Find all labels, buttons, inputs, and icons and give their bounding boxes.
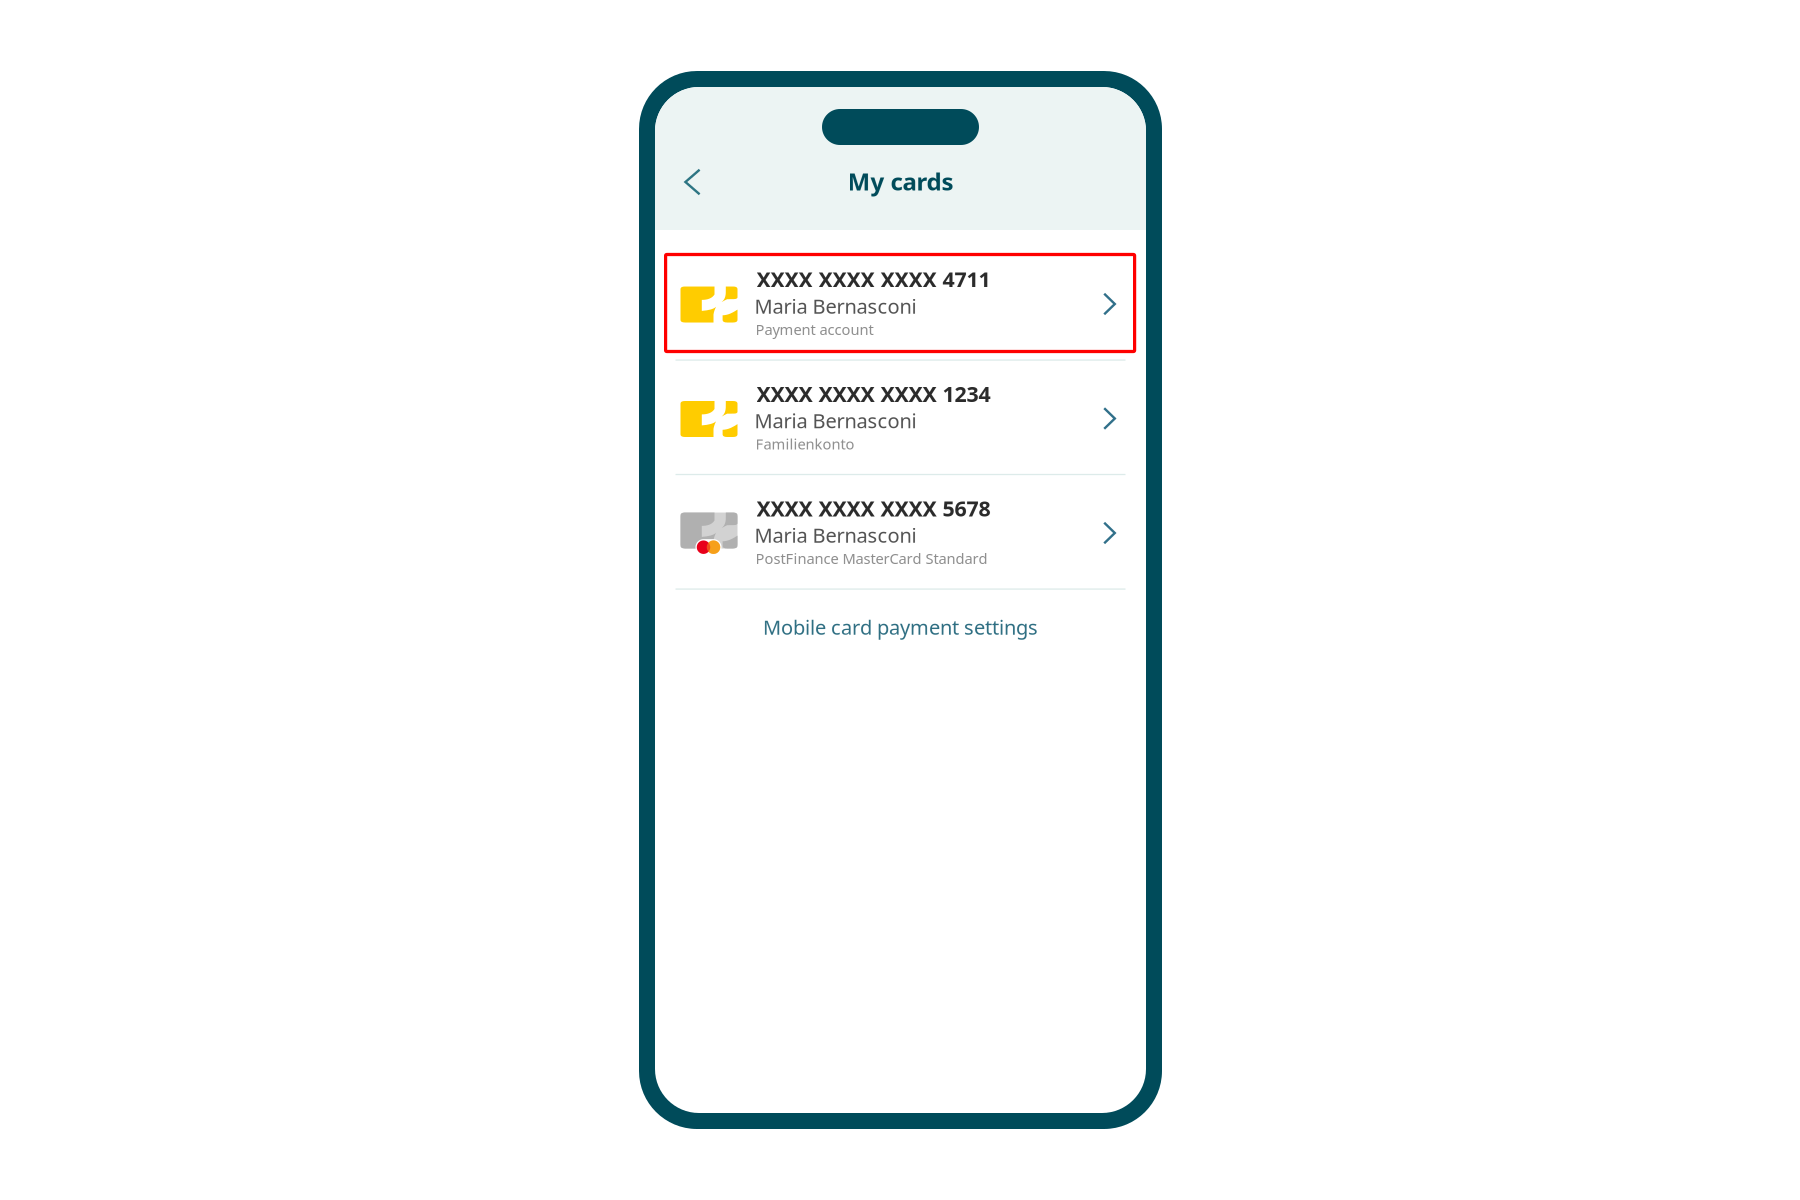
staticText: Mobile card payment settings: [763, 614, 1038, 640]
staticText: Maria Bernasconi: [755, 407, 917, 434]
button[interactable]: XXXX XXXX XXXX 4711: [655, 246, 1146, 359]
button[interactable]: Back: [670, 160, 714, 204]
staticText: XXXX XXXX XXXX 4711: [757, 265, 991, 293]
staticText: XXXX XXXX XXXX 5678: [757, 494, 991, 522]
button[interactable]: XXXX XXXX XXXX 1234: [655, 361, 1146, 474]
staticText: Maria Bernasconi: [755, 293, 917, 319]
staticText: Payment account: [756, 320, 874, 339]
staticText: My cards: [847, 165, 953, 197]
staticText: XXXX XXXX XXXX 1234: [757, 379, 991, 408]
staticText: Familienkonto: [756, 434, 855, 454]
staticText: PostFinance MasterCard Standard: [756, 549, 988, 568]
button[interactable]: XXXX XXXX XXXX 5678: [655, 475, 1146, 588]
staticText: Maria Bernasconi: [755, 522, 917, 548]
button[interactable]: Mobile card payment settings: [655, 590, 1146, 676]
